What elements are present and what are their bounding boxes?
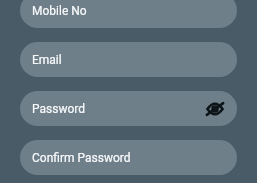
staticText: Password bbox=[32, 102, 86, 116]
button[interactable]: Email bbox=[20, 42, 237, 77]
staticText: Email bbox=[32, 53, 62, 67]
button[interactable]: Mobile No bbox=[20, 0, 237, 28]
staticText: Confirm Password bbox=[32, 151, 131, 165]
button[interactable]: Password bbox=[20, 91, 237, 126]
button[interactable]: Toggle password visibility bbox=[203, 97, 227, 121]
button[interactable]: Confirm Password bbox=[20, 140, 237, 175]
staticText: Mobile No bbox=[32, 4, 87, 18]
